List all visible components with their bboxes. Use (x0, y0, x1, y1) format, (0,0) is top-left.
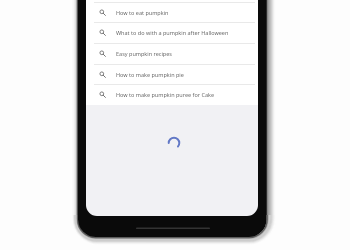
button[interactable]: How to make pumpkin pie (86, 64, 258, 85)
staticText: How to eat pumpkin (116, 9, 169, 16)
staticText: How to make pumpkin pie (116, 71, 184, 78)
staticText: What to do with a pumpkin after Hallowee… (116, 29, 229, 36)
button[interactable]: How to eat pumpkin (86, 2, 258, 23)
button[interactable]: What to do with a pumpkin after Hallowee… (86, 22, 258, 43)
button[interactable]: Easy pumpkin recipes (86, 43, 258, 64)
staticText: How to make pumpkin puree for Cake (116, 91, 215, 98)
staticText: Easy pumpkin recipes (116, 50, 172, 57)
other: Loading (167, 136, 181, 150)
button[interactable]: How to make pumpkin puree for Cake (86, 84, 258, 105)
